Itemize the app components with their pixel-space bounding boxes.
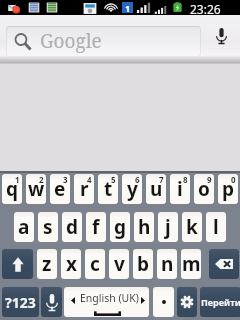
staticText: u bbox=[150, 176, 163, 202]
staticText: 2 bbox=[39, 174, 44, 185]
staticText: 7 bbox=[159, 174, 164, 185]
button[interactable]: t bbox=[98, 174, 118, 204]
button[interactable]: o bbox=[194, 174, 214, 204]
button[interactable]: g bbox=[110, 212, 130, 242]
staticText: h bbox=[138, 214, 151, 240]
staticText: n bbox=[161, 251, 174, 277]
button[interactable]: w bbox=[26, 174, 46, 204]
button[interactable]: Shift bbox=[2, 249, 33, 279]
staticText: k bbox=[186, 214, 198, 240]
staticText: y bbox=[127, 176, 138, 202]
staticText: English (UK) bbox=[80, 291, 139, 305]
staticText: v bbox=[114, 251, 125, 277]
staticText: p bbox=[222, 176, 235, 202]
button[interactable]: q bbox=[2, 174, 22, 204]
staticText: m bbox=[182, 251, 201, 277]
staticText: x bbox=[66, 251, 77, 277]
button[interactable]: a bbox=[14, 212, 34, 242]
button[interactable]: f bbox=[86, 212, 106, 242]
button[interactable]: y bbox=[122, 174, 142, 204]
staticText: d bbox=[66, 214, 79, 240]
staticText: 5 bbox=[111, 174, 116, 185]
button[interactable]: b bbox=[133, 249, 153, 279]
button[interactable]: i bbox=[170, 174, 190, 204]
staticText: 1 bbox=[125, 2, 131, 13]
button[interactable]: s bbox=[38, 212, 58, 242]
staticText: j bbox=[165, 214, 171, 240]
staticText: i bbox=[177, 176, 183, 202]
button[interactable]: n bbox=[157, 249, 177, 279]
staticText: 8 bbox=[183, 174, 188, 185]
button[interactable]: c bbox=[85, 249, 105, 279]
button[interactable]: Voice input bbox=[41, 287, 62, 317]
staticText: w bbox=[28, 176, 45, 202]
staticText: 23:26 bbox=[190, 1, 221, 16]
button[interactable]: u bbox=[146, 174, 166, 204]
staticText: a bbox=[18, 214, 30, 240]
staticText: 3 bbox=[63, 174, 68, 185]
staticText: 1 bbox=[15, 174, 20, 185]
button[interactable]: Voice search bbox=[202, 15, 240, 56]
staticText: f bbox=[92, 214, 100, 240]
staticText: 9 bbox=[207, 174, 212, 185]
staticText: e bbox=[54, 176, 66, 202]
button[interactable]: l bbox=[206, 212, 226, 242]
button[interactable]: z bbox=[37, 249, 57, 279]
button[interactable]: m bbox=[181, 249, 201, 279]
staticText: q bbox=[6, 176, 19, 202]
staticText: r bbox=[80, 176, 89, 202]
staticText: c bbox=[90, 251, 100, 277]
button[interactable]: x bbox=[61, 249, 81, 279]
staticText: t bbox=[104, 176, 113, 202]
button[interactable]: k bbox=[182, 212, 202, 242]
button[interactable]: Settings bbox=[177, 287, 197, 317]
button[interactable]: d bbox=[62, 212, 82, 242]
button[interactable]: p bbox=[218, 174, 238, 204]
staticText: 4 bbox=[87, 174, 92, 185]
staticText: Google bbox=[40, 28, 102, 54]
button[interactable]: Period bbox=[153, 287, 174, 317]
staticText: l bbox=[213, 214, 219, 240]
button[interactable]: ?123 bbox=[2, 287, 39, 317]
button[interactable]: j bbox=[158, 212, 178, 242]
staticText: Перейти bbox=[201, 296, 240, 308]
staticText: o bbox=[198, 176, 210, 202]
button[interactable]: English (UK) bbox=[64, 287, 149, 317]
button[interactable]: r bbox=[74, 174, 94, 204]
button[interactable]: e bbox=[50, 174, 70, 204]
staticText: z bbox=[42, 251, 52, 277]
staticText: g bbox=[114, 214, 127, 240]
staticText: ?123 bbox=[5, 293, 36, 312]
button[interactable]: Перейти bbox=[200, 287, 240, 317]
staticText: 6 bbox=[135, 174, 140, 185]
staticText: b bbox=[137, 251, 150, 277]
button[interactable]: h bbox=[134, 212, 154, 242]
staticText: 0 bbox=[231, 174, 236, 185]
button[interactable]: v bbox=[109, 249, 129, 279]
button[interactable]: Backspace bbox=[209, 249, 239, 279]
button[interactable]: Google bbox=[6, 26, 201, 57]
staticText: s bbox=[43, 214, 53, 240]
